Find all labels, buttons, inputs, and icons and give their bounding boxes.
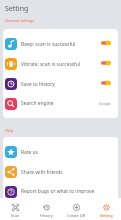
- staticText: Help: [5, 128, 14, 133]
- button[interactable]: Create QR: [61, 200, 91, 218]
- button[interactable]: Setting: [91, 200, 121, 218]
- staticText: Report bugs or what to improve: [21, 188, 95, 195]
- button[interactable]: Vibrate: scan is successful: [3, 54, 118, 74]
- button[interactable]: Rate us: [3, 142, 118, 162]
- staticText: Vibrate: scan is successful: [21, 61, 81, 68]
- button[interactable]: Report bugs or what to improve: [3, 182, 118, 201]
- staticText: Google: [99, 101, 111, 106]
- staticText: Create QR: [67, 213, 85, 218]
- staticText: Share with friends: [21, 169, 63, 176]
- staticText: Rate us: [21, 149, 38, 156]
- button[interactable]: History: [31, 200, 61, 218]
- button[interactable]: Search engine: [3, 94, 118, 113]
- staticText: Search engine: [21, 100, 54, 107]
- staticText: Setting: [100, 213, 113, 218]
- button[interactable]: Toggle on: [101, 80, 111, 86]
- staticText: History: [40, 213, 53, 218]
- staticText: Beep: scan is successful: [21, 41, 76, 48]
- button[interactable]: Toggle on: [101, 40, 111, 46]
- button[interactable]: Save to history: [3, 74, 118, 94]
- button[interactable]: Beep: scan is successful: [3, 34, 118, 54]
- staticText: Scan: [11, 213, 20, 218]
- button[interactable]: Scan: [0, 200, 31, 218]
- staticText: Setting: [5, 4, 29, 14]
- button[interactable]: Share with friends: [3, 162, 118, 182]
- staticText: General settings: [5, 18, 35, 23]
- staticText: Save to history: [21, 81, 55, 88]
- button[interactable]: Toggle on: [101, 60, 111, 66]
